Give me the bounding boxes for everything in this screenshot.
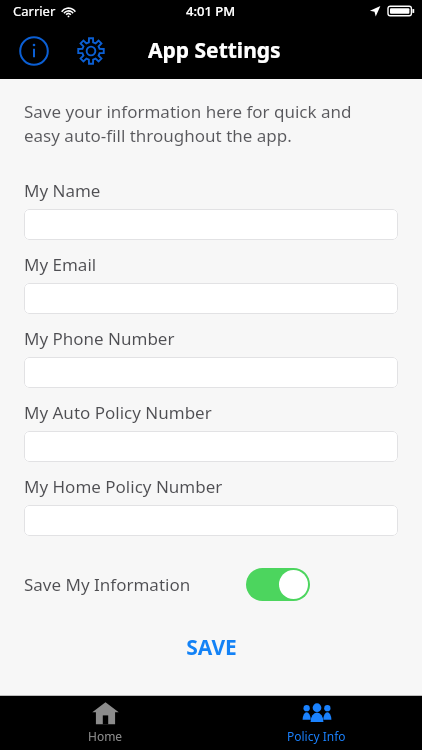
button[interactable]: Policy Info — [211, 696, 422, 750]
button[interactable] — [24, 431, 398, 462]
staticText: My Auto Policy Number — [24, 401, 212, 424]
button[interactable] — [24, 209, 398, 240]
button[interactable]: Settings — [71, 31, 111, 71]
staticText: My Phone Number — [24, 327, 175, 350]
staticText: My Home Policy Number — [24, 475, 223, 498]
button[interactable]: Save My Information toggle, on — [246, 568, 310, 601]
button[interactable] — [24, 357, 398, 388]
staticText: Save My Information — [24, 573, 191, 596]
button[interactable]: Information — [14, 31, 54, 71]
button[interactable]: Home — [0, 696, 211, 750]
button[interactable] — [24, 283, 398, 314]
staticText: Home — [88, 728, 123, 744]
staticText: Save your information here for quick and… — [24, 100, 360, 147]
button[interactable]: SAVE — [162, 627, 261, 668]
staticText: SAVE — [186, 633, 237, 662]
staticText: App Settings — [148, 36, 281, 65]
staticText: Carrier — [13, 2, 56, 20]
staticText: Policy Info — [287, 728, 346, 744]
staticText: 4:01 PM — [186, 2, 236, 20]
button[interactable] — [24, 505, 398, 536]
staticText: My Email — [24, 253, 97, 276]
staticText: My Name — [24, 179, 101, 202]
